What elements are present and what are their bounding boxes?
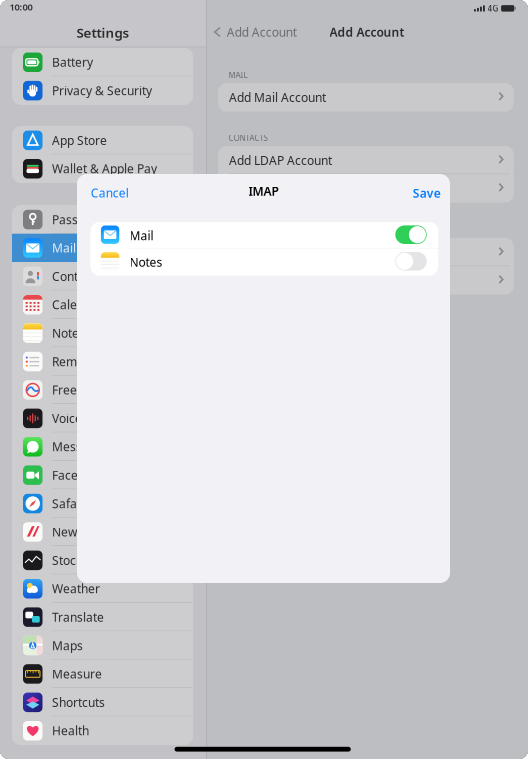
button[interactable]: Add CalDAV Account [218,238,513,266]
staticText: Stocks [52,552,88,568]
button[interactable]: Messages [12,432,193,461]
button[interactable]: Voice Memos [12,404,193,432]
button[interactable]: Add CardDAV Account [218,174,513,202]
staticText: Add Subscribed Calendar [229,272,370,288]
button[interactable]: Passwords [12,205,193,234]
staticText: Battery [52,54,93,70]
button[interactable]: Add LDAP Account [218,146,513,174]
button[interactable]: Maps [12,631,193,660]
staticText: Health [52,723,89,739]
staticText: FaceTime [52,467,106,483]
button[interactable]: Notes [12,319,193,347]
staticText: App Store [52,132,107,148]
button[interactable]: FaceTime [12,461,193,489]
staticText: Add LDAP Account [229,152,332,168]
staticText: CONTACTS [228,132,267,143]
staticText: Save [413,185,441,201]
staticText: Weather [52,581,100,597]
staticText: Messages [52,439,109,455]
button[interactable]: Shortcuts [12,688,193,716]
staticText: Cancel [91,185,129,201]
button[interactable]: Calendar [12,290,193,319]
button[interactable]: Reminders [12,347,193,376]
button[interactable]: Contacts [12,262,193,290]
staticText: Mail [52,240,76,256]
staticText: IMAP [248,183,278,199]
staticText: Shortcuts [52,694,105,710]
button[interactable]: Health [12,716,193,745]
staticText: Passwords [52,211,112,227]
button[interactable]: Privacy & Security [12,76,193,105]
staticText: Safari [52,495,85,511]
staticText: Voice Memos [52,410,127,426]
staticText: Calendar [52,297,103,313]
staticText: Maps [52,637,83,653]
staticText: Add Mail Account [229,89,326,105]
button[interactable]: Notes [91,249,438,275]
staticText: Add Account [329,24,404,40]
staticText: 4G [487,3,498,14]
staticText: Translate [52,609,104,625]
staticText: Freeform [52,382,104,398]
staticText: 10:00 [9,1,32,13]
staticText: Add Account [227,24,297,40]
button[interactable]: Wallet & Apple Pay [12,154,193,183]
staticText: Reminders [52,353,112,369]
staticText: MAIL [228,69,247,80]
button[interactable]: Mail [12,234,193,262]
staticText: Privacy & Security [52,83,152,98]
staticText: Notes [129,254,162,270]
button[interactable]: Mail [91,222,438,249]
button[interactable]: Stocks [12,546,193,574]
button[interactable]: Battery [12,48,193,76]
button[interactable]: Save [406,179,448,207]
staticText: Mail [129,227,153,243]
button[interactable]: Freeform [12,376,193,404]
button[interactable]: Add Mail Account [218,83,513,111]
staticText: Add CardDAV Account [229,180,352,196]
staticText: Measure [52,666,102,682]
button[interactable]: Cancel [84,179,136,207]
button[interactable]: Safari [12,489,193,518]
button[interactable]: Translate [12,603,193,631]
staticText: Wallet & Apple Pay [52,161,157,177]
staticText: News [52,524,83,540]
staticText: Contacts [52,268,101,284]
button[interactable]: Add Subscribed Calendar [218,266,513,294]
button[interactable]: Weather [12,574,193,603]
button[interactable]: Measure [12,660,193,688]
staticText: Notes [52,325,85,341]
button[interactable]: Add Account [210,19,301,45]
button[interactable]: App Store [12,126,193,154]
button[interactable]: News [12,518,193,546]
staticText: Settings [76,23,129,42]
